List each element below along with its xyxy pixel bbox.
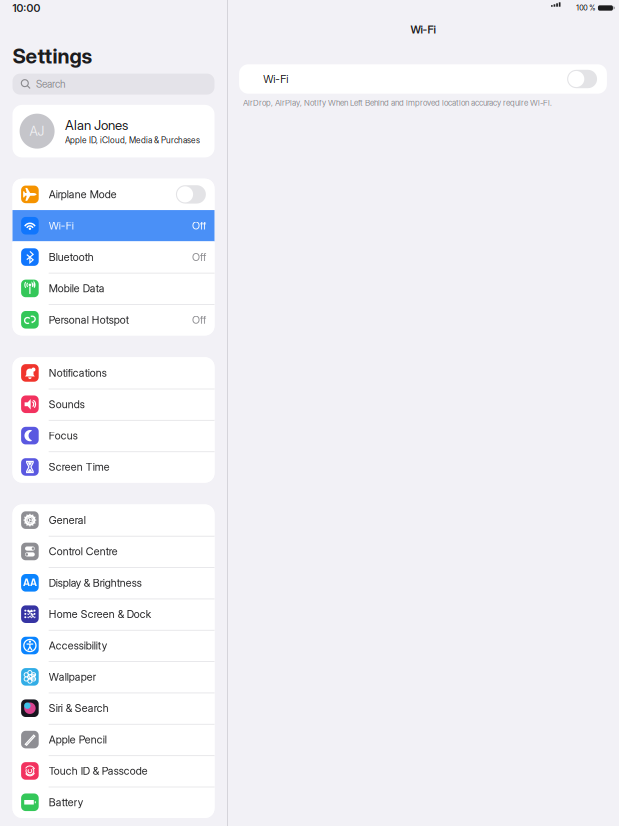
button[interactable]: Personal Hotspot	[12, 304, 214, 335]
staticText: Wi-Fi	[263, 72, 288, 85]
button[interactable]: AJ	[12, 105, 214, 157]
staticText: Off	[192, 313, 206, 326]
button[interactable]: Bluetooth	[12, 241, 214, 273]
staticText: 100 %	[576, 4, 595, 12]
staticText: Battery	[49, 796, 83, 809]
staticText: Display & Brightness	[49, 576, 142, 589]
button[interactable]: AA	[12, 567, 214, 598]
button[interactable]: Control Centre	[12, 536, 214, 567]
staticText: Wi-Fi	[410, 23, 435, 36]
staticText: Notifications	[49, 366, 107, 379]
button[interactable]: Mobile Data	[12, 273, 214, 304]
button[interactable]: Home Screen & Dock	[12, 598, 214, 630]
button[interactable]: Wi-Fi	[12, 210, 214, 241]
staticText: Screen Time	[49, 460, 110, 473]
button[interactable]: Battery	[12, 787, 214, 818]
staticText: AirDrop, AirPlay, Notify When Left Behin…	[243, 98, 552, 108]
button[interactable]: Notifications	[12, 357, 214, 389]
staticText: 10:00	[12, 1, 40, 14]
staticText: Off	[192, 219, 206, 232]
button[interactable]: Search	[12, 74, 214, 95]
staticText: Personal Hotspot	[49, 313, 129, 326]
button[interactable]: Touch ID & Passcode	[12, 755, 214, 787]
staticText: Bluetooth	[49, 251, 94, 263]
staticText: Wallpaper	[49, 670, 96, 683]
staticText: Settings	[12, 44, 92, 68]
button[interactable]: General	[12, 504, 214, 536]
button[interactable]: Wi-Fi	[239, 64, 607, 94]
button[interactable]: Airplane Mode	[12, 179, 214, 210]
button[interactable]: Wallpaper	[12, 661, 214, 693]
staticText: Siri & Search	[49, 702, 109, 715]
staticText: Airplane Mode	[49, 188, 117, 201]
staticText: AA	[23, 577, 37, 589]
button[interactable]: Focus	[12, 420, 214, 451]
staticText: Apple ID, iCloud, Media & Purchases	[65, 135, 200, 145]
staticText: Accessibility	[49, 639, 107, 652]
staticText: Apple Pencil	[49, 733, 107, 746]
staticText: Off	[192, 251, 206, 263]
staticText: AJ	[30, 123, 45, 139]
button[interactable]: Screen Time	[12, 451, 214, 483]
staticText: Alan Jones	[65, 117, 128, 133]
button[interactable]: Apple Pencil	[12, 724, 214, 755]
button[interactable]: Accessibility	[12, 630, 214, 661]
staticText: Control Centre	[49, 545, 118, 558]
staticText: Wi-Fi	[49, 219, 74, 232]
staticText: Focus	[49, 429, 78, 442]
button[interactable]: Sounds	[12, 389, 214, 420]
button[interactable]: Siri & Search	[12, 692, 214, 724]
staticText: Mobile Data	[49, 282, 105, 295]
staticText: Search	[36, 78, 66, 90]
staticText: Sounds	[49, 398, 85, 411]
staticText: Touch ID & Passcode	[49, 764, 148, 777]
staticText: Home Screen & Dock	[49, 608, 151, 621]
staticText: General	[49, 514, 86, 527]
